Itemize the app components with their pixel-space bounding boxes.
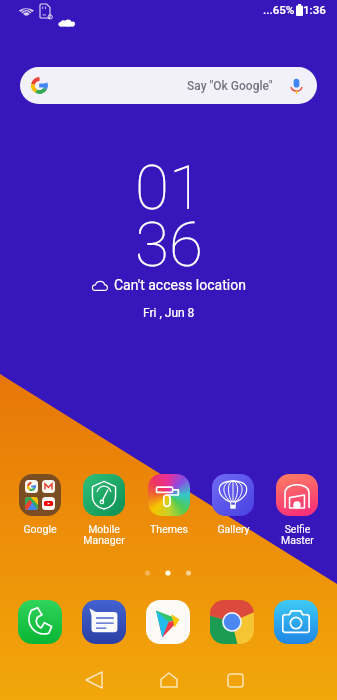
button[interactable]: Phone	[18, 600, 62, 644]
staticText: Gallery	[217, 523, 250, 535]
staticText: 1:36	[303, 3, 326, 17]
button[interactable]: Gallery	[205, 474, 261, 535]
button[interactable]: Say "Ok Google"	[20, 67, 317, 104]
staticText: Mobile Manager	[83, 523, 125, 547]
staticText: Fri , Jun 8	[143, 306, 195, 320]
staticText: Say "Ok Google"	[187, 79, 273, 93]
button[interactable]: Play Store	[146, 600, 190, 644]
staticText: ...65%	[263, 3, 295, 17]
button[interactable]: Recents	[215, 660, 255, 700]
staticText: Selfie Master	[281, 523, 314, 547]
button[interactable]: Mobile Manager	[76, 474, 132, 547]
staticText: 01	[135, 151, 203, 224]
button[interactable]: Selfie Master	[269, 474, 325, 547]
button[interactable]: Home	[149, 660, 189, 700]
staticText: Can't access location	[114, 277, 246, 293]
button[interactable]: Camera	[274, 600, 318, 644]
button[interactable]: Chrome	[210, 600, 254, 644]
button[interactable]: 01	[0, 151, 337, 330]
button[interactable]: Messages	[82, 600, 126, 644]
staticText: Themes	[150, 523, 188, 535]
button[interactable]: Themes	[141, 474, 197, 535]
button[interactable]: Voice search	[286, 76, 306, 96]
button[interactable]: Google	[12, 474, 68, 535]
button[interactable]: Back	[74, 660, 114, 700]
staticText: Google	[23, 523, 57, 535]
staticText: 36	[135, 208, 203, 281]
